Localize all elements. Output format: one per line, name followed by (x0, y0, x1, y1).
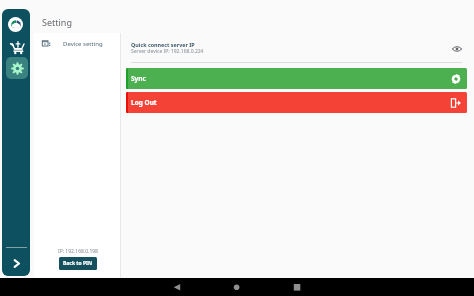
staticText: IP: 192.168.0.198 (58, 248, 98, 255)
staticText: Log Out (131, 98, 157, 107)
staticText: Sync (131, 74, 146, 83)
staticText: Back to PIN (63, 260, 93, 267)
button[interactable]: Settings (6, 57, 28, 79)
staticText: Server device IP: 192.168.0.224 (131, 48, 204, 55)
button[interactable]: Log Out (126, 92, 467, 113)
button[interactable]: Back to PIN (59, 257, 97, 270)
button[interactable]: Toggle IP visibility (449, 41, 465, 57)
button[interactable]: Expand navigation (7, 254, 25, 272)
button[interactable]: Device setting (34, 35, 120, 52)
staticText: Quick connect server IP (131, 41, 195, 48)
staticText: Device setting (63, 40, 103, 48)
button[interactable]: Orders (7, 37, 26, 56)
staticText: Setting (42, 16, 72, 28)
button[interactable]: Sync (126, 68, 467, 89)
button[interactable]: App logo (8, 17, 23, 32)
